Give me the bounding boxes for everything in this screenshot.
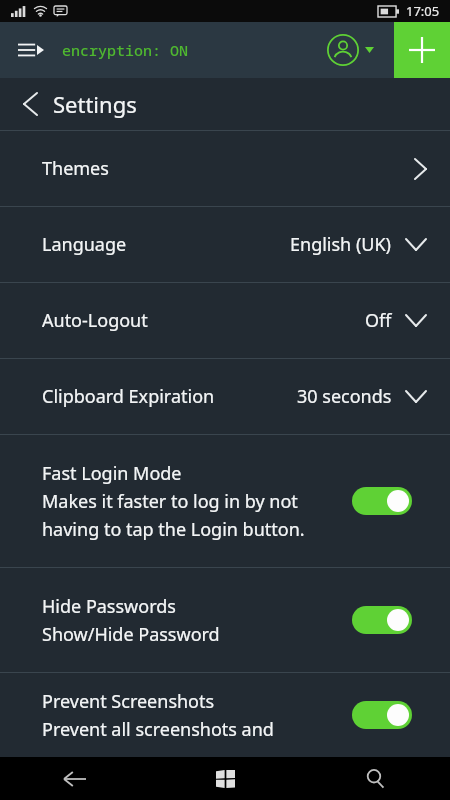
button[interactable]: Settings xyxy=(0,78,450,130)
button[interactable]: Auto-Logout xyxy=(0,283,450,358)
staticText: Prevent all screenshots and xyxy=(42,717,274,742)
button[interactable]: Toggle xyxy=(352,487,412,515)
button[interactable]: Toggle xyxy=(352,606,412,634)
button[interactable]: Menu xyxy=(14,38,48,62)
staticText: 17:05 xyxy=(406,2,440,20)
button[interactable]: Fast Login Mode xyxy=(0,435,450,567)
staticText: Language xyxy=(42,232,127,257)
staticText: Clipboard Expiration xyxy=(42,384,215,409)
staticText: Fast Login Mode xyxy=(42,461,182,486)
staticText: Themes xyxy=(42,156,109,181)
button[interactable]: Account xyxy=(323,30,378,70)
staticText: Off xyxy=(365,308,392,333)
button[interactable]: Clipboard Expiration xyxy=(0,359,450,434)
staticText: encryption: ON xyxy=(62,40,189,60)
staticText: 30 seconds xyxy=(297,384,392,409)
staticText: English (UK) xyxy=(290,232,392,257)
button[interactable]: Search xyxy=(300,757,450,800)
button[interactable]: Back xyxy=(0,757,150,800)
button[interactable]: Toggle xyxy=(352,701,412,729)
staticText: Auto-Logout xyxy=(42,308,148,333)
button[interactable]: Language xyxy=(0,207,450,282)
button[interactable]: Hide Passwords xyxy=(0,568,450,672)
staticText: Show/Hide Password xyxy=(42,622,220,647)
button[interactable]: Themes xyxy=(0,131,450,206)
staticText: Prevent Screenshots xyxy=(42,689,215,714)
staticText: Hide Passwords xyxy=(42,594,176,619)
button[interactable]: Home xyxy=(150,757,300,800)
button[interactable]: Prevent Screenshots xyxy=(0,673,450,757)
staticText: Makes it faster to log in by not xyxy=(42,489,298,514)
staticText: Settings xyxy=(53,89,137,119)
button[interactable]: Add xyxy=(394,22,450,78)
staticText: having to tap the Login button. xyxy=(42,517,305,542)
